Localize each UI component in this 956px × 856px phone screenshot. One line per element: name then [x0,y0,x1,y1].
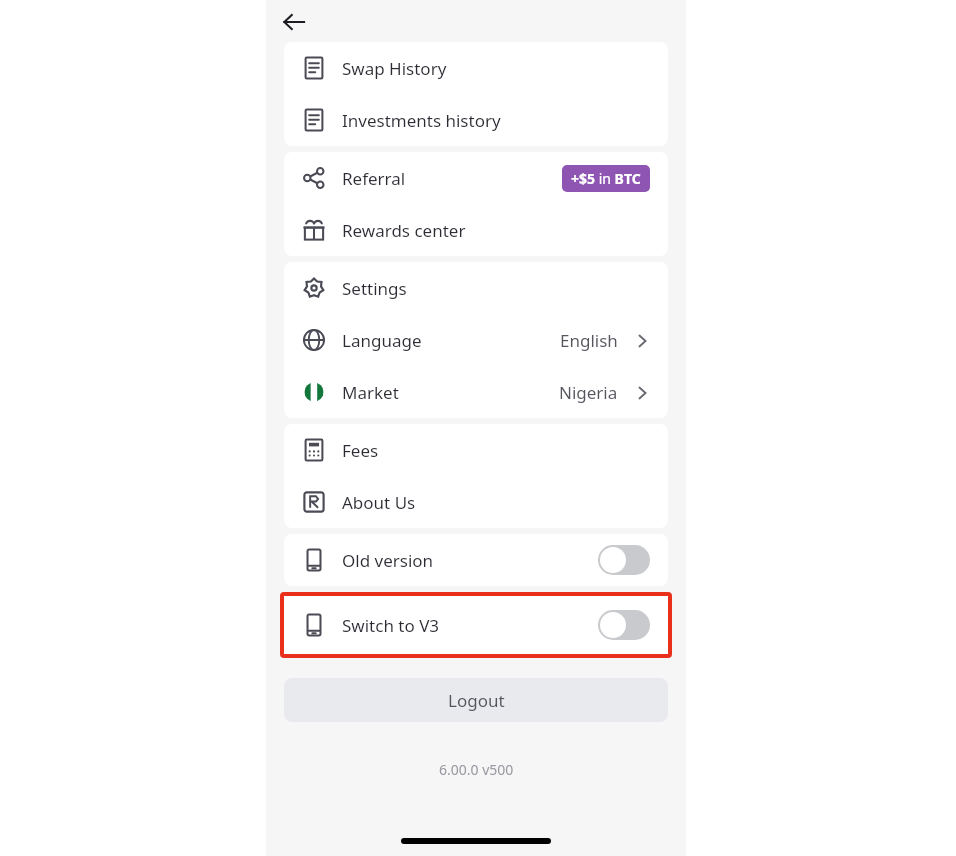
button[interactable]: Logout [284,678,668,722]
button[interactable]: Toggle [598,545,650,575]
staticText: About Us [342,491,416,514]
staticText: Fees [342,439,379,462]
staticText: Swap History [342,57,447,80]
button[interactable]: Switch to V3 [284,596,668,654]
staticText: +$5 in BTC [571,169,641,188]
button[interactable]: Rewards center [284,204,668,256]
staticText: Nigeria [559,381,618,404]
staticText: Old version [342,549,434,572]
button[interactable]: Market [284,366,668,418]
button[interactable]: Old version [284,534,668,586]
button[interactable]: Settings [284,262,668,314]
button[interactable]: Language [284,314,668,366]
staticText: Referral [342,167,406,190]
button[interactable]: Referral [284,152,668,204]
staticText: Investments history [342,109,501,132]
button[interactable]: Investments history [284,94,668,146]
staticText: Logout [448,689,505,712]
button[interactable]: About Us [284,476,668,528]
staticText: Switch to V3 [342,614,440,637]
staticText: Settings [342,277,407,300]
button[interactable]: Fees [284,424,668,476]
button[interactable]: Back [274,2,314,42]
staticText: English [560,329,618,352]
staticText: Market [342,381,399,404]
button[interactable]: Toggle [598,610,650,640]
button[interactable]: Swap History [284,42,668,94]
staticText: Rewards center [342,219,466,242]
staticText: Language [342,329,422,352]
staticText: 6.00.0 v500 [439,760,514,779]
